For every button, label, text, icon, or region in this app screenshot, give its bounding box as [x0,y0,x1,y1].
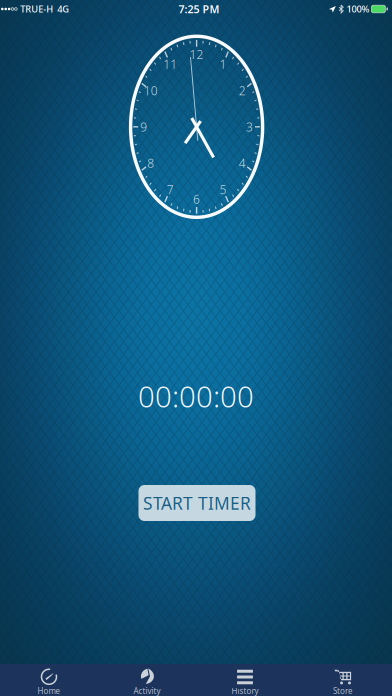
staticText: History [231,686,258,696]
button[interactable]: Home [0,664,98,696]
button[interactable]: START TIMER [138,485,255,521]
staticText: 4G [57,3,69,15]
button[interactable]: Activity [98,664,196,696]
staticText: 7 [167,181,174,197]
staticText: 12 [190,46,204,62]
button[interactable]: History [196,664,294,696]
staticText: 00:00:00 [138,376,254,415]
staticText: 4 [239,155,246,171]
staticText: 2 [239,83,246,98]
staticText: 8 [147,155,154,171]
staticText: 6 [193,191,200,207]
button[interactable]: Store [294,664,392,696]
staticText: 100% [346,3,369,15]
staticText: 3 [246,119,253,135]
staticText: 7:25 PM [179,2,220,16]
staticText: START TIMER [143,491,251,514]
staticText: 9 [140,119,147,135]
staticText: Activity [133,686,160,696]
staticText: Store [333,686,353,696]
staticText: 11 [163,56,177,72]
staticText: TRUE-H [20,3,53,15]
staticText: 10 [144,83,158,98]
staticText: 5 [219,181,226,197]
staticText: Home [37,686,60,696]
staticText: 1 [219,56,226,72]
